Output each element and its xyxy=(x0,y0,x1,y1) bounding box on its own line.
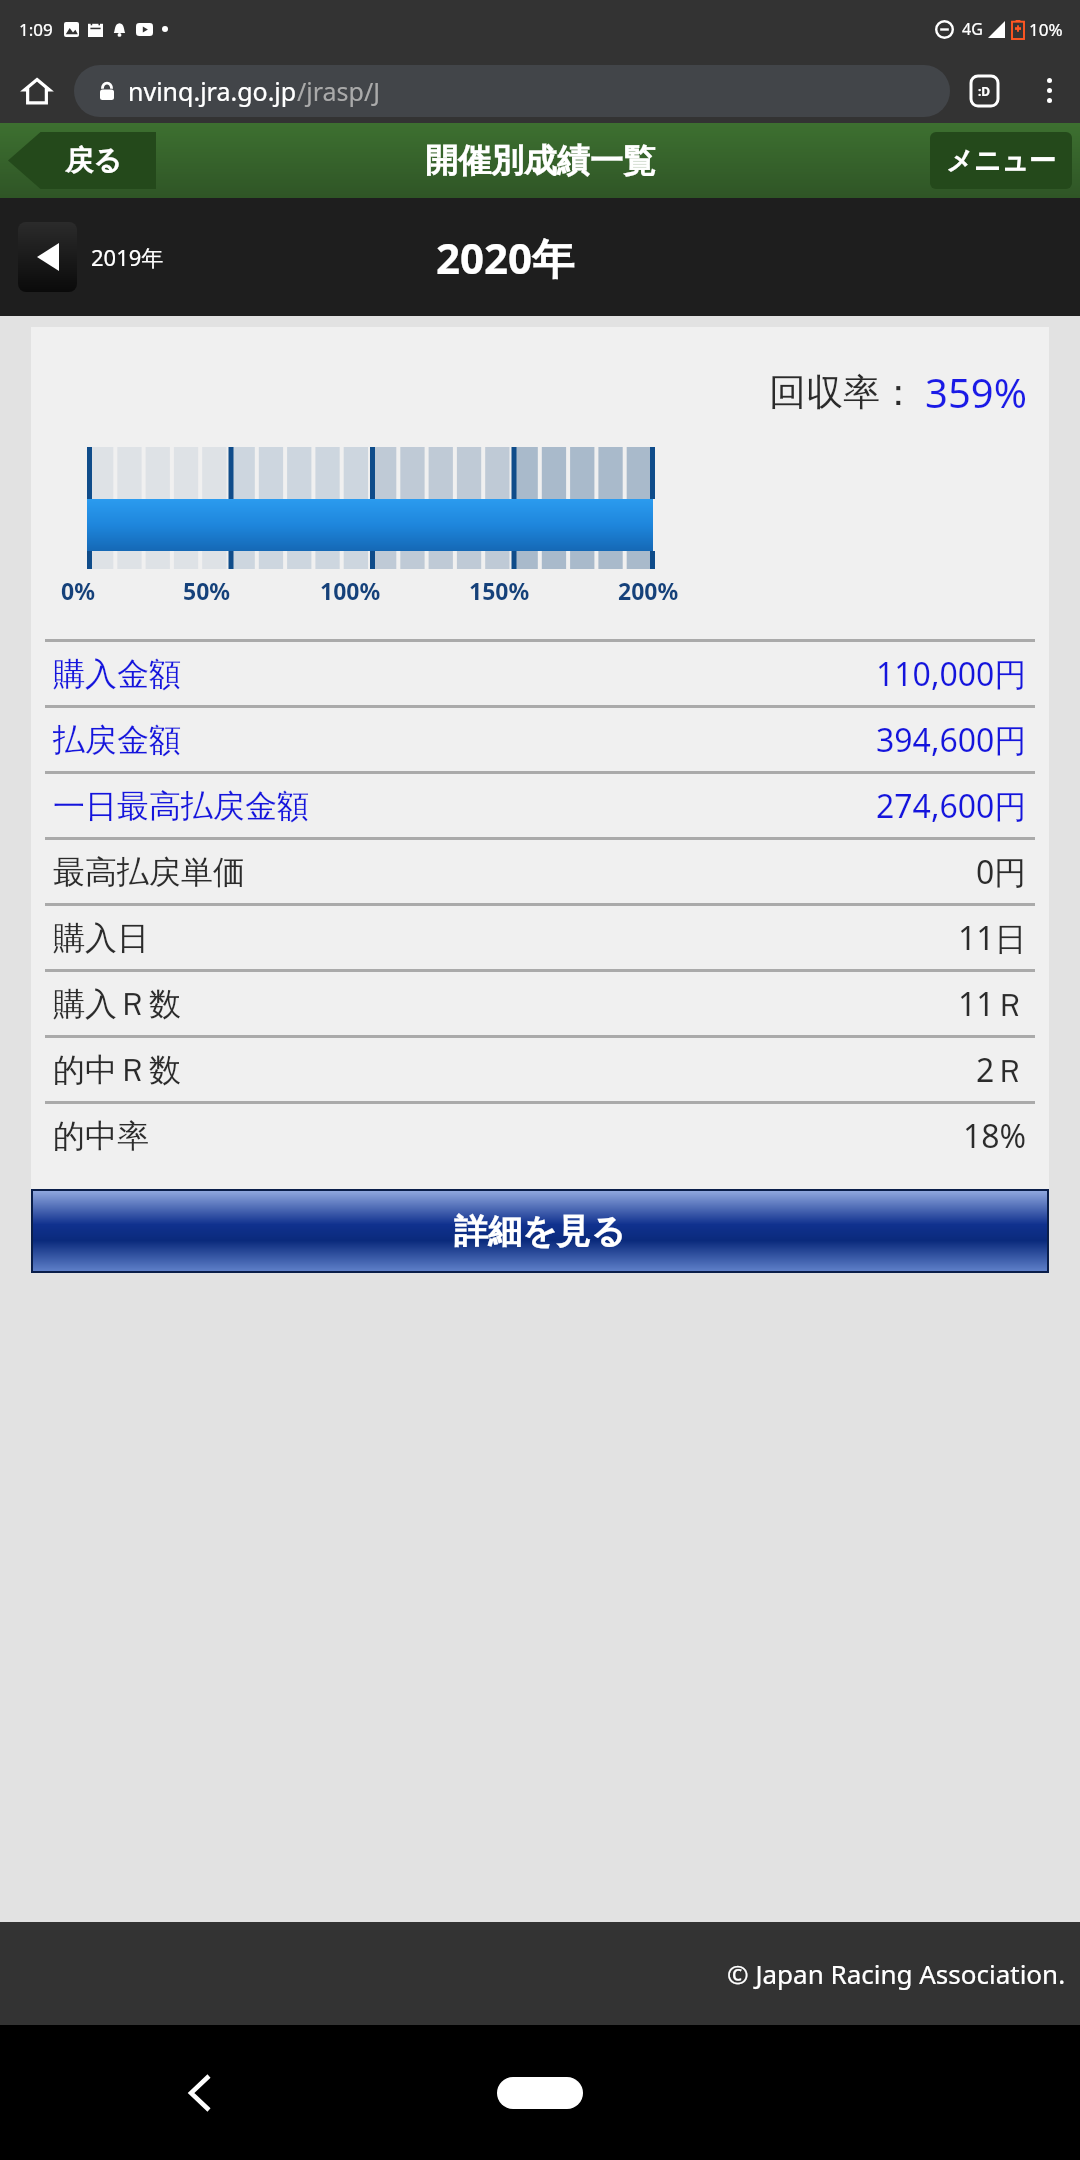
staticText: 11日 xyxy=(958,916,1027,960)
staticText: 回収率： xyxy=(769,369,917,416)
staticText: 4G xyxy=(962,18,983,40)
staticText: 戻る xyxy=(65,143,122,178)
button[interactable]: 購入金額 xyxy=(53,642,1027,705)
button[interactable]: Home xyxy=(0,58,74,123)
staticText: 詳細を見る xyxy=(454,1210,626,1253)
staticText: 2Ｒ xyxy=(976,1048,1027,1092)
button[interactable]: 的中Ｒ数 xyxy=(53,1038,1027,1101)
staticText: :D xyxy=(978,83,991,99)
staticText: 払戻金額 xyxy=(53,720,181,760)
staticText: 100% xyxy=(320,575,381,606)
staticText: nvinq.jra.go.jp xyxy=(128,74,297,108)
staticText: 最高払戻単価 xyxy=(53,852,245,892)
button[interactable]: Previous year xyxy=(18,222,164,292)
staticText: 110,000円 xyxy=(876,652,1027,696)
staticText: © Japan Racing Association. xyxy=(727,1956,1066,1991)
button[interactable]: メニュー xyxy=(930,132,1072,189)
staticText: 的中Ｒ数 xyxy=(53,1050,181,1090)
staticText: 274,600円 xyxy=(876,784,1027,828)
staticText: 購入日 xyxy=(53,918,149,958)
staticText: 0% xyxy=(61,575,95,606)
staticText: 購入Ｒ数 xyxy=(53,984,181,1024)
staticText: 購入金額 xyxy=(53,654,181,694)
staticText: 2020年 xyxy=(436,229,575,286)
button[interactable]: 購入日 xyxy=(53,906,1027,969)
button[interactable]: 払戻金額 xyxy=(53,708,1027,771)
staticText: メニュー xyxy=(946,144,1056,178)
staticText: 50% xyxy=(183,575,231,606)
staticText: 18% xyxy=(963,1114,1027,1158)
button[interactable]: 一日最高払戻金額 xyxy=(53,774,1027,837)
button[interactable]: 的中率 xyxy=(53,1104,1027,1167)
staticText: 11Ｒ xyxy=(958,982,1027,1026)
button[interactable]: 最高払戻単価 xyxy=(53,840,1027,903)
button[interactable]: Reader mode xyxy=(950,58,1018,123)
other: Previous year xyxy=(18,222,77,292)
staticText: 一日最高払戻金額 xyxy=(53,786,309,826)
staticText: 開催別成績一覧 xyxy=(425,140,656,182)
staticText: /jrasp/J xyxy=(297,74,381,108)
staticText: 394,600円 xyxy=(876,718,1027,762)
staticText: 359% xyxy=(925,365,1027,419)
button[interactable]: nvinq.jra.go.jp xyxy=(74,65,950,117)
staticText: 150% xyxy=(469,575,530,606)
staticText: 的中率 xyxy=(53,1116,149,1156)
button[interactable]: Back xyxy=(170,2063,230,2123)
button[interactable]: More options xyxy=(1018,58,1080,123)
button[interactable]: 詳細を見る xyxy=(33,1191,1047,1271)
button[interactable]: 戻る xyxy=(8,132,156,189)
staticText: 2019年 xyxy=(91,242,164,272)
staticText: 1:09 xyxy=(19,18,53,41)
staticText: 200% xyxy=(618,575,679,606)
staticText: 10% xyxy=(1029,18,1063,41)
button[interactable]: 購入Ｒ数 xyxy=(53,972,1027,1035)
button[interactable]: Home gesture xyxy=(497,2077,583,2109)
staticText: 0円 xyxy=(976,850,1027,894)
